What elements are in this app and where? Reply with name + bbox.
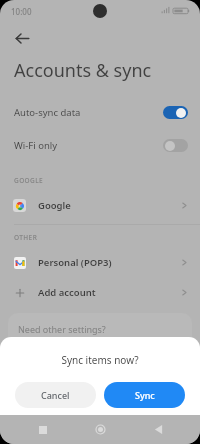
button[interactable]: Google <box>0 192 200 218</box>
button[interactable]: Wi-Fi only <box>0 132 200 158</box>
staticText: Accounts & sync <box>14 58 152 83</box>
button[interactable]: Back <box>8 24 36 52</box>
staticText: 10:00 <box>11 6 32 17</box>
staticText: Sync items now? <box>61 353 139 367</box>
button[interactable]: Home <box>85 415 115 444</box>
staticText: Personal (POP3) <box>38 256 181 269</box>
staticText: Add account <box>38 286 181 299</box>
staticText: OTHER <box>14 233 38 242</box>
staticText: GOOGLE <box>14 176 44 185</box>
button[interactable]: Auto-sync data <box>0 99 200 125</box>
staticText: Need other settings? <box>18 323 106 335</box>
button[interactable]: Add account <box>0 279 200 305</box>
button[interactable]: Sync <box>104 382 185 408</box>
staticText: Google <box>38 199 181 212</box>
button[interactable]: Cancel <box>15 382 96 408</box>
button[interactable]: Recents <box>28 415 58 444</box>
staticText: Sync <box>135 389 155 401</box>
staticText: Wi-Fi only <box>14 139 163 152</box>
button[interactable]: Personal (POP3) <box>0 249 200 275</box>
staticText: Auto-sync data <box>14 106 163 119</box>
button[interactable]: Need other settings? <box>8 313 192 353</box>
button[interactable]: Back <box>143 415 173 444</box>
staticText: Cancel <box>41 389 70 401</box>
